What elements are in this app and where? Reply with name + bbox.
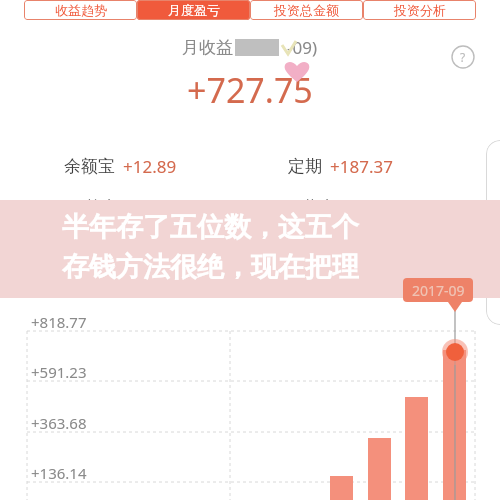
staticText: +136.14 <box>31 463 87 483</box>
button[interactable]: 投资分析 <box>363 0 476 20</box>
button[interactable]: 收益趋势 <box>24 0 137 20</box>
staticText: +818.77 <box>31 312 87 332</box>
staticText: 2017-09 <box>412 281 465 300</box>
staticText: 投资总金额 <box>274 2 339 18</box>
staticText: 投资分析 <box>394 2 446 18</box>
staticText: +12.89 <box>123 155 177 178</box>
staticText: +363.68 <box>31 413 87 433</box>
staticText: 月收益 <box>182 37 233 58</box>
button[interactable]: 投资总金额 <box>250 0 363 20</box>
staticText: 黄金 <box>302 197 336 218</box>
staticText: ? <box>460 49 466 65</box>
staticText: 余额宝 <box>64 156 115 177</box>
button[interactable]: 2017-09 <box>403 278 473 302</box>
staticText: 0.00 <box>344 196 378 219</box>
staticText: -09) <box>287 36 318 59</box>
staticText: +527.49 <box>126 196 189 219</box>
staticText: +591.23 <box>31 362 87 382</box>
staticText: +187.37 <box>330 155 393 178</box>
staticText: 半年存了五位数，这五个 <box>62 210 359 244</box>
staticText: +727.75 <box>187 67 313 113</box>
staticText: 月度盈亏 <box>168 2 220 18</box>
staticText: 存钱方法很绝，现在把理 <box>62 250 359 284</box>
staticText: 定期 <box>288 156 322 177</box>
staticText: 基金 <box>84 197 118 218</box>
staticText: 收益趋势 <box>55 2 107 18</box>
button[interactable]: Help <box>449 43 477 71</box>
button[interactable]: 月度盈亏 <box>137 0 250 20</box>
